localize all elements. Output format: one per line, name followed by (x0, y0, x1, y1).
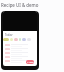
button[interactable] (3, 47, 37, 51)
button[interactable] (3, 51, 37, 55)
staticText: Recipe UI & demo (1, 2, 39, 8)
button[interactable] (10, 38, 13, 41)
staticText: + New (27, 61, 34, 64)
button[interactable] (27, 38, 31, 41)
button[interactable] (22, 38, 26, 41)
staticText: Today (5, 33, 13, 36)
button[interactable] (3, 43, 37, 47)
button[interactable]: Add recipe (26, 60, 34, 64)
button[interactable] (3, 59, 37, 63)
button[interactable] (3, 38, 9, 41)
button[interactable] (19, 38, 21, 41)
button[interactable] (3, 55, 37, 59)
button[interactable] (14, 38, 18, 41)
